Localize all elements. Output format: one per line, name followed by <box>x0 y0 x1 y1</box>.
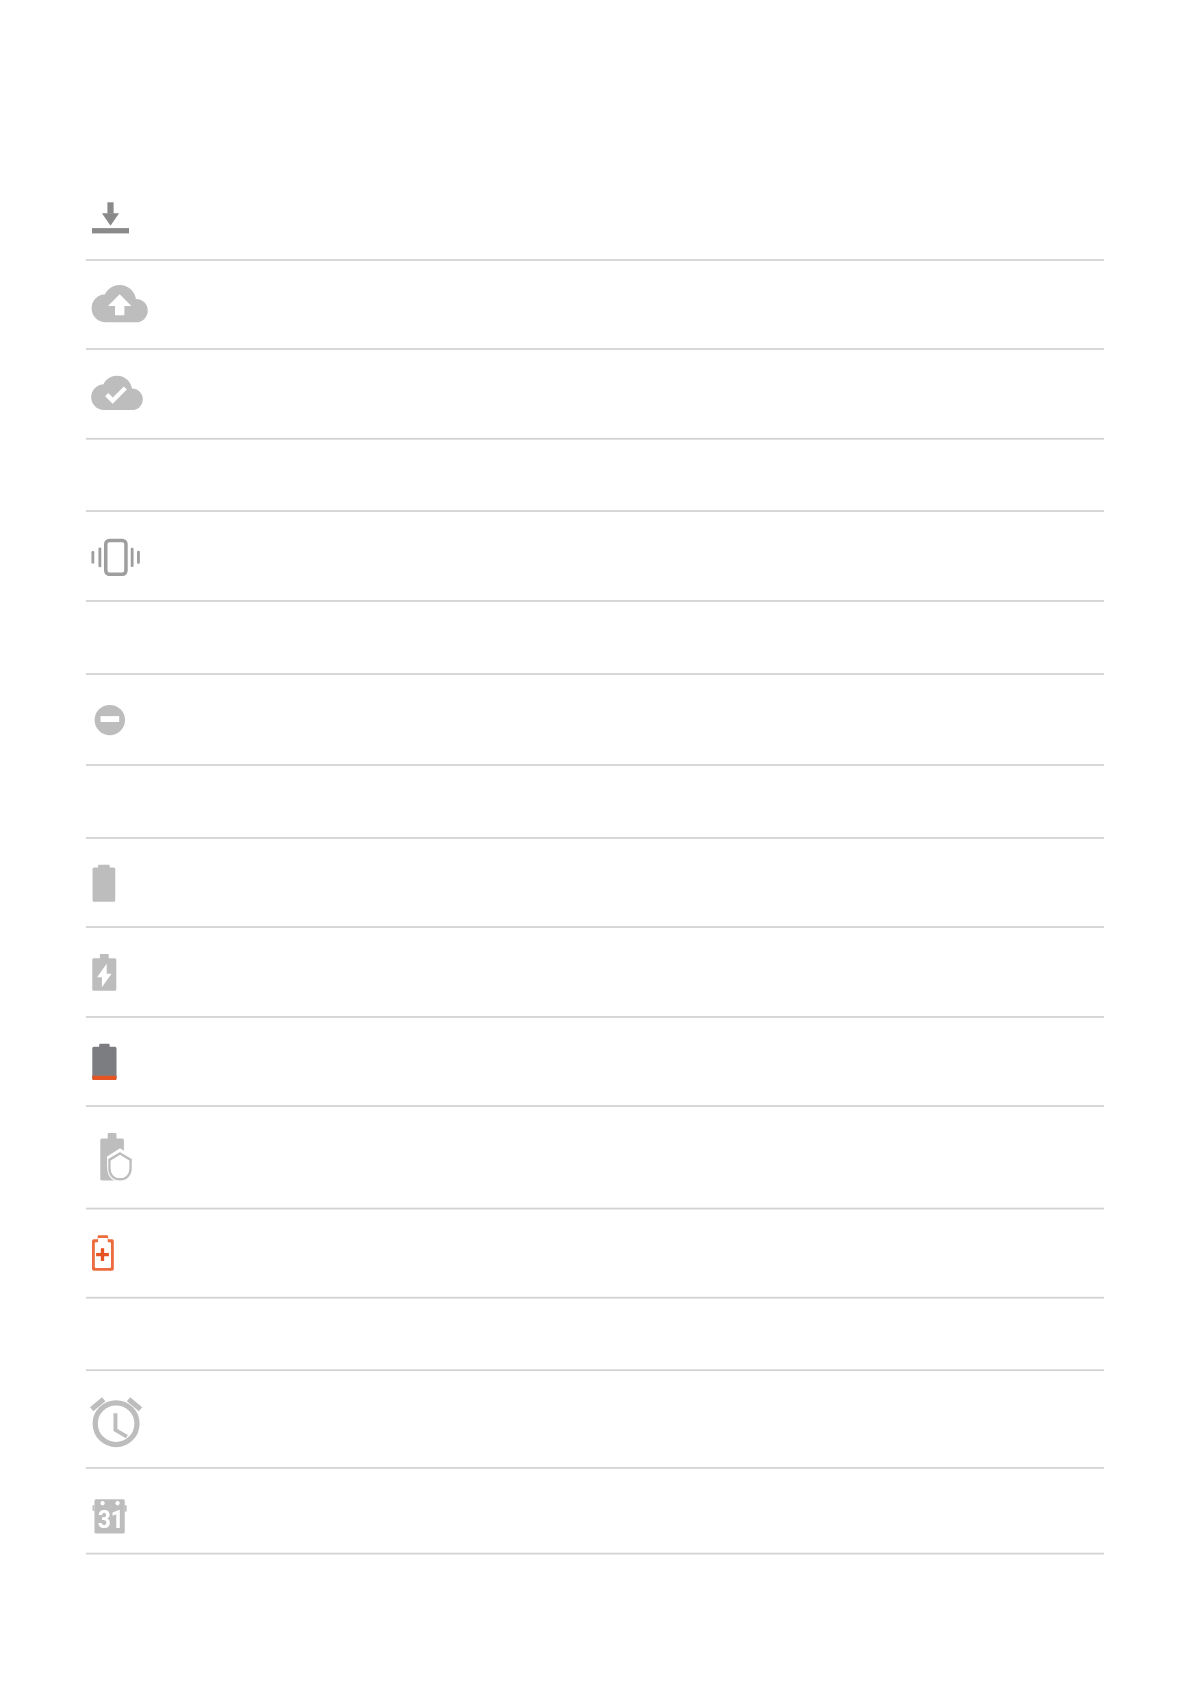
button[interactable]: Download <box>0 171 1191 260</box>
button[interactable]: List item <box>0 765 1191 838</box>
button[interactable]: Battery charging <box>0 927 1191 1017</box>
button[interactable]: Battery alert <box>0 1017 1191 1106</box>
button[interactable]: Battery full <box>0 838 1191 927</box>
button[interactable]: Battery plus <box>0 1209 1191 1298</box>
button[interactable]: List item <box>0 601 1191 674</box>
button[interactable]: Do not disturb <box>0 674 1191 765</box>
button[interactable]: Calendar <box>0 1468 1191 1554</box>
button[interactable]: List item <box>0 1298 1191 1371</box>
button[interactable]: Alarm <box>0 1370 1191 1468</box>
button[interactable]: Vibration <box>0 511 1191 601</box>
button[interactable]: List item <box>0 439 1191 511</box>
button[interactable]: Cloud done <box>0 349 1191 439</box>
button[interactable]: Battery saver <box>0 1106 1191 1209</box>
button[interactable]: Backup <box>0 260 1191 349</box>
